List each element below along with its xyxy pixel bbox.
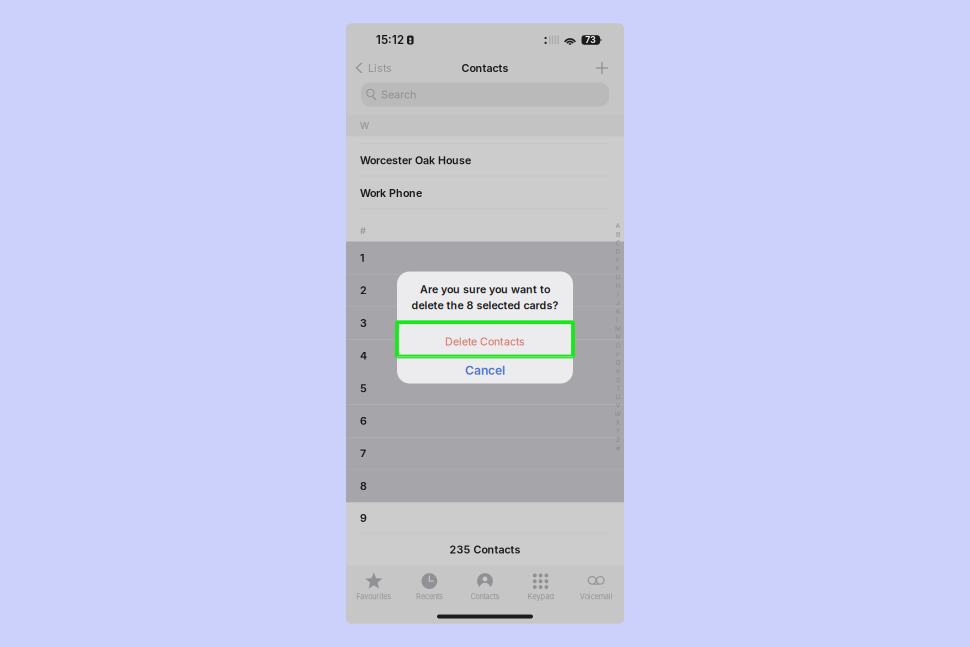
staticText: R [616,367,620,375]
button[interactable]: Keypad [513,571,568,602]
staticText: G [615,273,620,281]
staticText: 15:12 [376,33,404,47]
staticText: 7 [360,447,366,460]
staticText: T [616,384,620,392]
staticText: Q [615,359,620,367]
staticText: O [615,341,620,350]
staticText: C [615,239,620,247]
staticText: L [616,316,620,324]
staticText: Recents [416,592,443,601]
staticText: W [614,410,621,418]
button[interactable]: 1 [346,241,624,274]
staticText: Z [616,436,620,444]
staticText: Search [381,88,416,101]
staticText: 9 [360,511,367,524]
staticText: N [615,333,620,341]
staticText: Contacts [461,61,508,74]
staticText: P [616,350,620,358]
staticText: Cancel [465,363,505,378]
staticText: B [616,230,620,238]
staticText: H [615,282,620,290]
staticText: 235 Contacts [449,543,520,556]
staticText: U [615,393,620,401]
staticText: Work Phone [360,186,422,199]
staticText: Delete Contacts [445,335,525,348]
button[interactable]: 9 [346,502,624,533]
staticText: I [617,290,619,298]
staticText: 6 [360,414,367,427]
button[interactable]: Search [361,82,609,106]
button[interactable]: 2 [346,274,624,307]
staticText: Favourites [356,592,391,601]
staticText: M [615,324,621,332]
staticText: A [615,222,620,230]
staticText: W [360,120,369,131]
staticText: Y [615,427,620,435]
staticText: delete the 8 selected cards? [411,299,558,312]
staticText: S [616,376,620,384]
button[interactable]: Worcester Oak House [346,144,624,176]
staticText: 2 [360,284,367,297]
button[interactable]: 6 [346,405,624,437]
staticText: D [615,247,620,256]
staticText: X [615,418,620,427]
button[interactable]: 7 [346,437,624,470]
staticText: E [616,256,620,264]
staticText: J [616,299,620,307]
staticText: 73 [585,35,596,45]
staticText: 1 [360,251,365,264]
button[interactable]: Cancel [397,357,573,383]
button[interactable]: Lists [355,56,392,79]
staticText: Voicemail [580,592,613,601]
button[interactable]: Work Phone [346,176,624,209]
button[interactable]: Recents [402,571,457,602]
staticText: Are you sure you want to [420,283,550,296]
staticText: Contacts [470,592,499,601]
staticText: Lists [368,61,392,75]
staticText: K [616,307,620,315]
staticText: 5 [360,382,367,395]
button[interactable]: 3 [346,307,624,339]
button[interactable]: 5 [346,372,624,405]
button[interactable]: Add contact [596,62,608,74]
button[interactable]: Contacts [457,571,513,602]
staticText: # [616,444,620,452]
staticText: Keypad [528,592,554,601]
staticText: Worcester Oak House [360,154,471,167]
staticText: 8 [360,480,367,493]
button[interactable]: 4 [346,339,624,372]
button[interactable]: Delete Contacts [397,322,573,356]
button[interactable]: Favourites [346,571,402,602]
button[interactable]: 8 [346,470,624,502]
staticText: 3 [360,317,367,329]
staticText: # [360,225,366,236]
staticText: V [615,401,620,409]
staticText: 4 [360,349,367,362]
button[interactable]: Voicemail [568,571,624,602]
staticText: F [616,265,620,273]
